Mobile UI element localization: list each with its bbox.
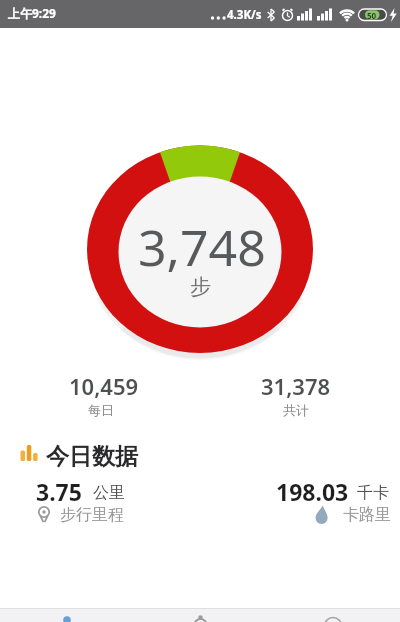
staticText: 千卡 [357,483,389,503]
staticText: 198.03 [276,476,349,506]
staticText: 10,459 [69,371,139,401]
button[interactable] [0,608,134,622]
staticText: 步 [190,274,211,300]
button[interactable] [134,608,267,622]
staticText: 4.3K/s [227,7,262,23]
staticText: 今日数据 [46,442,138,471]
button[interactable] [40,372,170,420]
button[interactable] [12,438,388,470]
button[interactable] [230,372,360,420]
staticText: 共计 [283,402,309,418]
staticText: 3,748 [138,213,266,281]
staticText: 上午9:29 [8,5,56,21]
staticText: 公里 [93,483,125,503]
staticText: 每日 [88,402,114,418]
staticText: 50 [367,10,377,21]
button[interactable] [267,608,400,622]
staticText: 31,378 [261,371,331,401]
button[interactable] [87,145,313,355]
staticText: 卡路里 [343,505,391,525]
staticText: 步行里程 [60,505,124,525]
button[interactable] [250,478,390,528]
button[interactable] [20,478,190,528]
staticText: 3.75 [36,476,82,506]
